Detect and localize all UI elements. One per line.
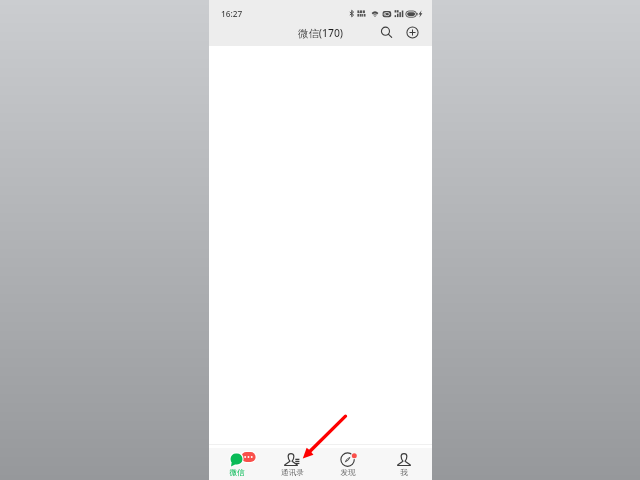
staticText: 16:27 [221, 8, 243, 19]
button[interactable]: New chat [403, 23, 421, 41]
staticText: 我 [400, 468, 408, 478]
button[interactable]: 微信 [209, 448, 264, 480]
staticText: 微信 [229, 468, 245, 478]
button[interactable]: Search [377, 23, 395, 41]
staticText: 通讯录 [281, 468, 304, 478]
staticText: 微信(170) [298, 26, 344, 40]
button[interactable]: 我 [376, 448, 432, 480]
button[interactable]: 通讯录 [264, 448, 320, 480]
button[interactable]: 发现 [320, 448, 376, 480]
staticText: 发现 [340, 468, 356, 478]
